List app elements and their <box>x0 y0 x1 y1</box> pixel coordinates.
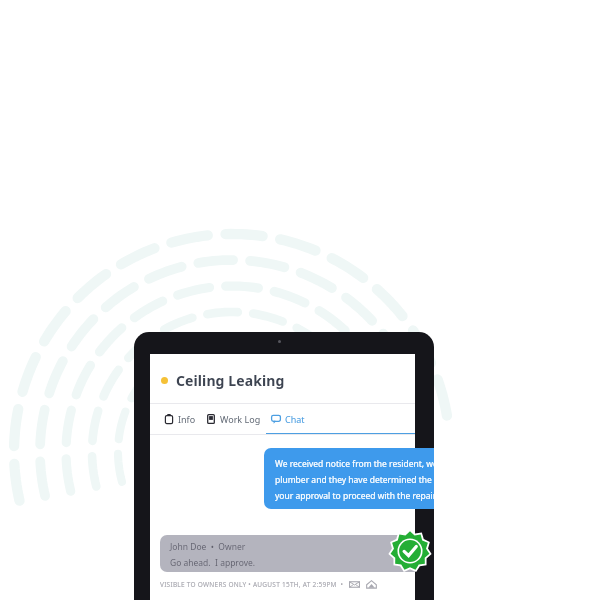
staticText: We received notice from the resident, we… <box>275 458 434 470</box>
button[interactable]: Approved <box>388 529 432 573</box>
button[interactable]: We received notice from the resident, we… <box>264 448 434 509</box>
staticText: VISIBLE TO OWNERS ONLY • AUGUST 15TH, AT… <box>160 580 344 589</box>
button[interactable]: Info <box>159 413 201 425</box>
button[interactable]: Open email <box>366 579 377 590</box>
button[interactable]: Work Log <box>201 413 266 425</box>
staticText: John Doe • Owner <box>170 541 246 553</box>
staticText: Work Log <box>220 413 261 425</box>
staticText: your approval to proceed with the repair… <box>275 490 434 502</box>
staticText: plumber and they have determined the cos… <box>275 474 434 486</box>
button[interactable]: John Doe • Owner <box>160 535 415 572</box>
staticText: Chat <box>285 413 305 425</box>
staticText: Info <box>178 413 196 425</box>
button[interactable]: Ceiling Leaking <box>150 371 415 390</box>
staticText: Go ahead. I approve. <box>170 557 256 569</box>
staticText: Ceiling Leaking <box>176 371 285 390</box>
button[interactable]: Chat <box>266 413 310 425</box>
button[interactable]: Send email <box>349 579 360 590</box>
